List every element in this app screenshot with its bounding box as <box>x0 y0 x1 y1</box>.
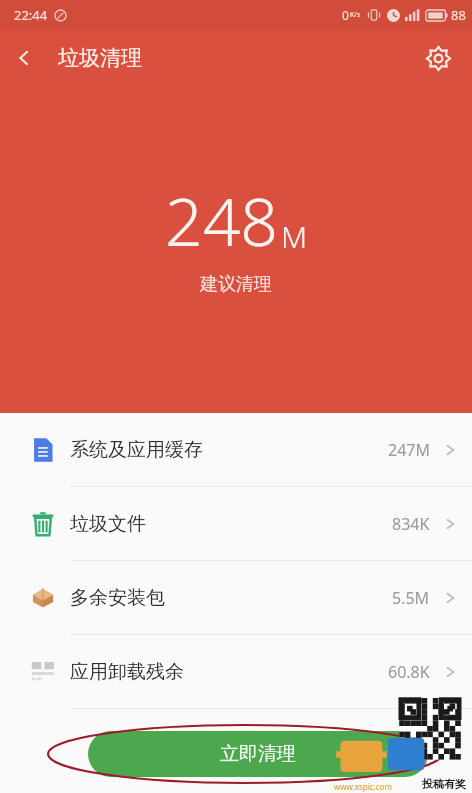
staticText: 5.5M <box>392 587 430 609</box>
staticText: 立即清理 <box>220 742 296 766</box>
staticText: 系统及应用缓存 <box>70 438 388 462</box>
staticText: 建议清理 <box>200 273 272 296</box>
button[interactable]: Back <box>0 40 42 76</box>
staticText: 834K <box>392 513 430 535</box>
staticText: 投稿有奖 <box>422 777 466 791</box>
staticText: 60.8K <box>388 661 430 683</box>
staticText: 247M <box>388 439 430 461</box>
staticText: 多余安装包 <box>70 586 392 610</box>
staticText: 垃圾清理 <box>58 45 142 71</box>
staticText: 0 <box>342 7 349 23</box>
button[interactable]: Settings <box>416 36 460 80</box>
staticText: 88 <box>451 6 466 24</box>
staticText: 垃圾文件 <box>70 512 392 536</box>
button[interactable]: 系统及应用缓存 <box>0 413 472 487</box>
button[interactable]: 多余安装包 <box>0 561 472 635</box>
button[interactable]: 应用卸载残余 <box>0 635 472 709</box>
button[interactable]: 垃圾文件 <box>0 487 472 561</box>
button[interactable]: 立即清理 <box>88 731 428 777</box>
staticText: 22:44 <box>14 6 48 24</box>
staticText: M <box>281 216 308 257</box>
staticText: 应用卸载残余 <box>70 660 388 684</box>
staticText: 248 <box>165 175 279 265</box>
staticText: www.xspic.com <box>334 781 392 792</box>
staticText: K/s <box>350 10 361 20</box>
